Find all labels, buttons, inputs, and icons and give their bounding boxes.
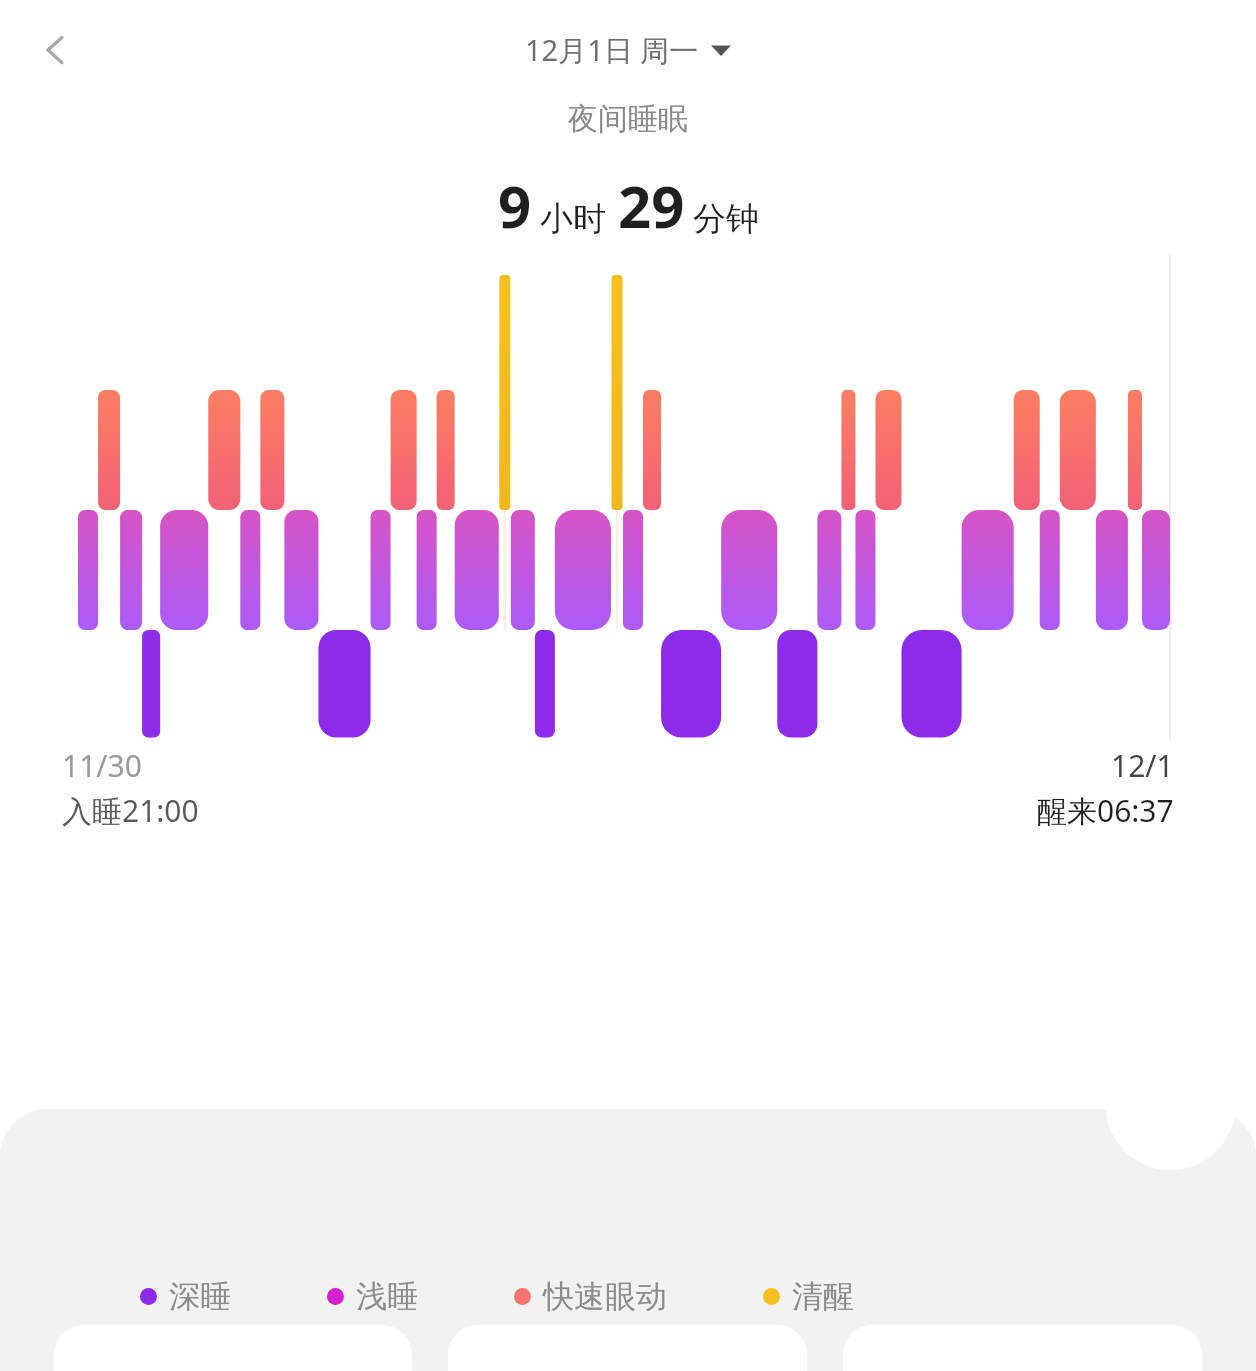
staticText: 清醒 — [792, 1277, 854, 1316]
button[interactable]: 快速眼动 — [514, 1277, 667, 1316]
staticText: 浅睡 — [356, 1277, 418, 1316]
staticText: 11/30 — [62, 745, 142, 786]
button[interactable]: 浅睡 — [327, 1277, 418, 1316]
staticText: 快速眼动 — [543, 1277, 667, 1316]
staticText: 29 — [618, 166, 685, 245]
staticText: 12月1日 周一 — [525, 30, 699, 70]
staticText: 深睡 — [169, 1277, 231, 1316]
button[interactable]: 深睡 — [140, 1277, 231, 1316]
button[interactable]: Back — [22, 20, 82, 80]
button[interactable]: 清醒 — [763, 1277, 854, 1316]
staticText: 12/1 — [1111, 745, 1174, 786]
staticText: 9 — [498, 166, 532, 245]
staticText: 入睡21:00 — [62, 790, 199, 831]
staticText: 夜间睡眠 — [0, 100, 1256, 138]
staticText: 醒来06:37 — [1037, 790, 1174, 831]
staticText: 分钟 — [693, 198, 759, 240]
staticText: 小时 — [540, 198, 606, 240]
button[interactable]: 12月1日 周一 — [525, 30, 731, 70]
